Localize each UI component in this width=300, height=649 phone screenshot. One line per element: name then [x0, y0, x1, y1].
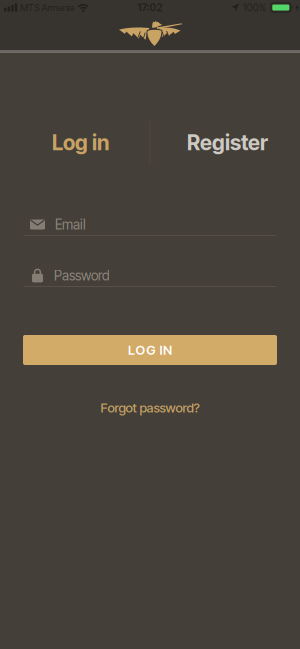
staticText: Register [187, 130, 268, 155]
staticText: MTS Armenia [20, 2, 74, 13]
button[interactable]: Log in [0, 120, 150, 164]
button[interactable]: Email [0, 210, 300, 236]
staticText: 17:02 [137, 1, 162, 14]
button[interactable]: Register [150, 120, 300, 164]
staticText: Log in [52, 130, 109, 155]
staticText: LOG IN [128, 342, 172, 358]
button[interactable]: Forgot password? [100, 400, 199, 416]
button[interactable]: LOG IN [23, 335, 277, 365]
staticText: Forgot password? [100, 400, 199, 416]
staticText: Email [55, 216, 86, 233]
staticText: 100% [243, 1, 267, 14]
staticText: Password [54, 267, 110, 284]
button[interactable]: Password [0, 261, 300, 287]
